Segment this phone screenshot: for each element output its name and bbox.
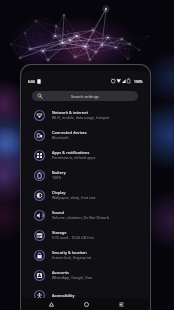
- staticText: Search settings: [32, 94, 138, 99]
- staticText: Permissions, default apps: [52, 155, 96, 160]
- button[interactable]: Accounts: [22, 265, 149, 285]
- button[interactable]: Sound: [22, 205, 149, 225]
- button[interactable]: Display: [22, 185, 149, 205]
- staticText: Accounts: [52, 270, 70, 275]
- button[interactable]: Search settings: [32, 91, 138, 101]
- button[interactable]: Storage: [22, 225, 149, 245]
- staticText: 61% used - 10.66 GB free: [52, 235, 94, 240]
- staticText: Connected devices: [52, 130, 87, 135]
- button[interactable]: Security & location: [22, 245, 149, 265]
- staticText: WhatsApp, Google, Duo: [52, 275, 93, 280]
- staticText: Accessibility: [52, 293, 75, 298]
- staticText: Apps & notifications: [52, 150, 90, 155]
- button[interactable]: Connected devices: [22, 125, 149, 145]
- staticText: Volume, vibration, Do Not Disturb: [52, 215, 109, 220]
- staticText: Wi-Fi, mobile, data usage, hotspot: [52, 115, 110, 120]
- staticText: Sound: [52, 210, 64, 215]
- staticText: Battery: [52, 170, 66, 175]
- staticText: Display: [52, 190, 66, 195]
- button[interactable]: Apps & notifications: [22, 145, 149, 165]
- staticText: Network & internet: [52, 110, 88, 115]
- button[interactable]: Accessibility: [22, 285, 149, 305]
- staticText: 100%: [134, 79, 143, 84]
- button[interactable]: Battery: [22, 165, 149, 185]
- button[interactable]: Recents: [114, 298, 128, 310]
- staticText: Wallpaper, sleep, font size: [52, 195, 96, 200]
- button[interactable]: Home: [79, 298, 93, 310]
- staticText: Storage: [52, 230, 67, 235]
- button[interactable]: Network & internet: [22, 105, 149, 125]
- staticText: Screen lock, fingerprint: [52, 255, 92, 260]
- staticText: Security & location: [52, 250, 87, 255]
- staticText: 100%: [52, 175, 62, 180]
- button[interactable]: Back: [44, 298, 58, 310]
- staticText: 6:04: [28, 79, 35, 84]
- staticText: Bluetooth: [52, 135, 69, 140]
